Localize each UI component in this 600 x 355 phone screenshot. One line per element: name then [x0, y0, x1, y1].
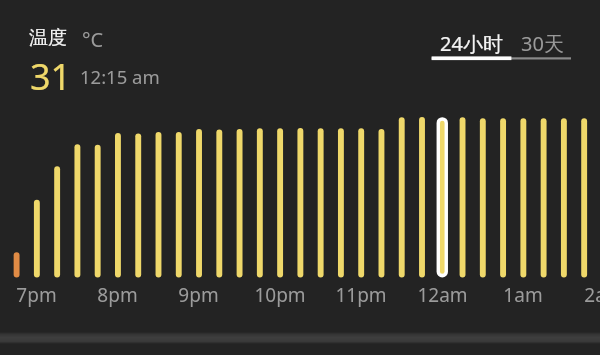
- staticText: 11pm: [335, 282, 387, 308]
- staticText: 31: [30, 52, 72, 101]
- staticText: 10pm: [254, 282, 306, 308]
- staticText: °C: [82, 26, 104, 53]
- staticText: 12am: [417, 282, 468, 308]
- staticText: 12:15 am: [80, 64, 160, 89]
- staticText: 2am: [584, 282, 600, 308]
- staticText: 温度: [29, 26, 67, 50]
- button[interactable]: 24小时: [428, 26, 515, 62]
- staticText: 7pm: [16, 282, 57, 308]
- staticText: 30天: [521, 30, 564, 57]
- staticText: 1am: [503, 282, 543, 308]
- button[interactable]: 30天: [511, 26, 573, 62]
- staticText: 24小时: [440, 30, 503, 57]
- staticText: 9pm: [178, 282, 219, 308]
- staticText: 8pm: [97, 282, 138, 308]
- other: Temperature bar chart: [0, 0, 600, 355]
